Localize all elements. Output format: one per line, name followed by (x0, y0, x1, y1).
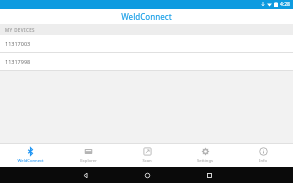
button[interactable]: Back (54, 167, 116, 183)
staticText: Explorer (80, 158, 97, 164)
button[interactable]: Scan (119, 144, 175, 167)
other: WeldConnect (26, 147, 35, 156)
staticText: 4:28 (280, 1, 290, 8)
button[interactable]: Explorer (60, 144, 116, 167)
button[interactable]: 11317998 (0, 53, 293, 70)
button[interactable]: Settings (177, 144, 233, 167)
staticText: Scan (142, 158, 152, 164)
staticText: WeldConnect (17, 158, 44, 164)
other: Info (259, 147, 268, 156)
staticText: WeldConnect (121, 11, 172, 22)
staticText: 11317003 (5, 40, 31, 47)
other: Scan (143, 147, 152, 156)
button[interactable]: 11317003 (0, 35, 293, 52)
button[interactable]: Recents (178, 167, 240, 183)
staticText: MY DEVICES (5, 27, 35, 33)
staticText: 11317998 (5, 58, 31, 65)
button[interactable]: Home (116, 167, 178, 183)
other: Settings (201, 147, 210, 156)
button[interactable]: Info (235, 144, 291, 167)
staticText: Info (259, 158, 267, 164)
button[interactable]: WeldConnect (2, 144, 58, 167)
other: Explorer (84, 147, 93, 156)
staticText: Settings (197, 158, 213, 164)
